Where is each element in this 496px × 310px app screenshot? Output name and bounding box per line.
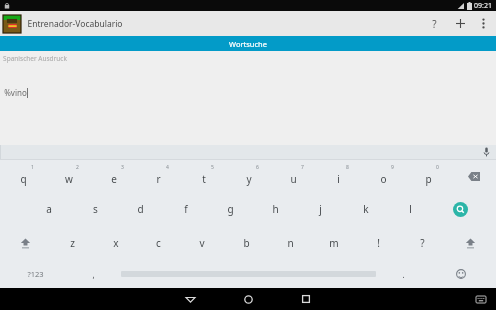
- staticText: 3: [121, 164, 124, 171]
- staticText: ?123: [27, 269, 44, 279]
- staticText: t: [202, 172, 206, 186]
- staticText: s: [93, 202, 98, 216]
- staticText: k: [363, 202, 369, 216]
- staticText: 2: [76, 164, 79, 171]
- staticText: Entrenador-Vocabulario: [27, 18, 123, 30]
- button[interactable]: Period: [381, 260, 425, 288]
- button[interactable]: Add: [447, 11, 473, 36]
- button[interactable]: Help: [421, 11, 447, 36]
- staticText: ,: [92, 269, 95, 280]
- button[interactable]: Comma: [71, 260, 115, 288]
- button[interactable]: Shift: [0, 226, 51, 260]
- staticText: g: [227, 202, 234, 216]
- button[interactable]: z: [51, 226, 94, 260]
- button[interactable]: k: [343, 192, 388, 226]
- button[interactable]: Switch keyboard: [474, 292, 488, 306]
- staticText: n: [287, 236, 294, 250]
- staticText: q: [20, 172, 27, 186]
- button[interactable]: Emoji: [425, 260, 496, 288]
- button[interactable]: f: [163, 192, 208, 226]
- staticText: a: [46, 202, 52, 216]
- staticText: h: [272, 202, 279, 216]
- staticText: 7: [301, 164, 304, 171]
- staticText: i: [337, 172, 340, 186]
- button[interactable]: Back: [161, 288, 219, 310]
- staticText: b: [243, 236, 250, 250]
- staticText: z: [70, 236, 75, 250]
- button[interactable]: Voice input: [481, 147, 491, 157]
- button[interactable]: Shift: [444, 226, 496, 260]
- staticText: x: [113, 236, 119, 250]
- staticText: ?: [432, 17, 437, 31]
- staticText: v: [199, 236, 205, 250]
- staticText: Wortsuche: [229, 39, 267, 49]
- staticText: 4: [166, 164, 169, 171]
- button[interactable]: h: [253, 192, 298, 226]
- button[interactable]: Search: [433, 192, 487, 226]
- button[interactable]: Backspace: [451, 160, 496, 192]
- button[interactable]: n: [268, 226, 312, 260]
- staticText: 9: [391, 164, 394, 171]
- button[interactable]: 1: [0, 160, 46, 192]
- staticText: m: [329, 236, 339, 250]
- staticText: r: [156, 172, 161, 186]
- button[interactable]: d: [118, 192, 163, 226]
- button[interactable]: x: [94, 226, 137, 260]
- button[interactable]: Home: [219, 288, 277, 310]
- button[interactable]: Space: [115, 260, 381, 288]
- staticText: 6: [256, 164, 259, 171]
- button[interactable]: 4: [136, 160, 181, 192]
- button[interactable]: 9: [361, 160, 406, 192]
- staticText: c: [156, 236, 161, 250]
- button[interactable]: ?: [400, 226, 444, 260]
- staticText: j: [319, 202, 322, 216]
- button[interactable]: c: [137, 226, 180, 260]
- staticText: o: [380, 172, 387, 186]
- staticText: e: [111, 172, 117, 186]
- button[interactable]: Wortsuche: [0, 36, 496, 51]
- button[interactable]: 5: [181, 160, 226, 192]
- staticText: f: [184, 202, 188, 216]
- staticText: %vino: [4, 87, 27, 98]
- button[interactable]: j: [298, 192, 343, 226]
- button[interactable]: b: [224, 226, 268, 260]
- button[interactable]: More options: [473, 11, 493, 36]
- staticText: .: [402, 269, 405, 280]
- staticText: 0: [436, 164, 439, 171]
- staticText: 5: [211, 164, 214, 171]
- button[interactable]: 6: [226, 160, 271, 192]
- staticText: d: [137, 202, 144, 216]
- button[interactable]: a: [26, 192, 72, 226]
- button[interactable]: 0: [406, 160, 451, 192]
- button[interactable]: s: [72, 192, 118, 226]
- staticText: u: [290, 172, 297, 186]
- staticText: !: [377, 236, 380, 250]
- staticText: p: [425, 172, 432, 186]
- button[interactable]: g: [208, 192, 253, 226]
- button[interactable]: 3: [91, 160, 136, 192]
- staticText: 8: [346, 164, 349, 171]
- button[interactable]: 7: [271, 160, 316, 192]
- button[interactable]: v: [180, 226, 224, 260]
- button[interactable]: !: [356, 226, 400, 260]
- button[interactable]: m: [312, 226, 356, 260]
- staticText: w: [65, 172, 73, 186]
- staticText: l: [409, 202, 412, 216]
- button[interactable]: l: [388, 192, 433, 226]
- staticText: 1: [31, 164, 34, 171]
- staticText: y: [246, 172, 252, 186]
- staticText: Spanischer Ausdruck: [3, 54, 67, 63]
- button[interactable]: Recents: [277, 288, 335, 310]
- button[interactable]: 2: [46, 160, 91, 192]
- staticText: 09:21: [474, 1, 492, 11]
- button[interactable]: 8: [316, 160, 361, 192]
- button[interactable]: ?123: [0, 260, 71, 288]
- staticText: ?: [420, 236, 425, 250]
